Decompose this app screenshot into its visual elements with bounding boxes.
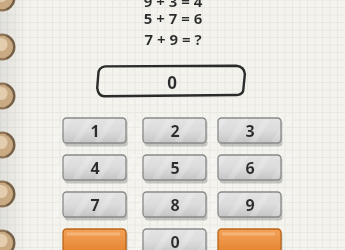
staticText: 7 + 9 = ? <box>118 29 228 49</box>
staticText: 1 <box>90 120 100 142</box>
button[interactable]: 2 <box>143 118 208 146</box>
button[interactable]: 0 <box>94 63 250 103</box>
staticText: 6 <box>245 157 255 179</box>
staticText: 3 <box>245 120 255 142</box>
staticText: 9 + 3 = 4 <box>118 0 228 11</box>
staticText: 5 <box>170 157 180 179</box>
staticText: 9 <box>245 194 255 216</box>
button[interactable]: 9 <box>218 192 283 220</box>
button[interactable]: Submit answer <box>218 229 283 250</box>
staticText: 4 <box>90 157 100 179</box>
staticText: 2 <box>170 120 180 142</box>
button[interactable]: 6 <box>218 155 283 183</box>
staticText: 7 <box>90 194 100 216</box>
staticText: 0 <box>167 71 177 94</box>
button[interactable]: 0 <box>143 229 208 250</box>
button[interactable]: 8 <box>143 192 208 220</box>
staticText: 5 + 7 = 6 <box>118 8 228 28</box>
button[interactable]: 3 <box>218 118 283 146</box>
staticText: 0 <box>170 231 180 250</box>
button[interactable]: 7 <box>63 192 128 220</box>
button[interactable]: 4 <box>63 155 128 183</box>
button[interactable]: Delete <box>63 229 128 250</box>
button[interactable]: 1 <box>63 118 128 146</box>
button[interactable]: 5 <box>143 155 208 183</box>
staticText: 8 <box>170 194 180 216</box>
